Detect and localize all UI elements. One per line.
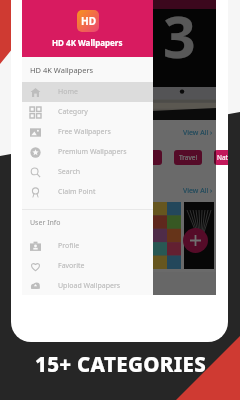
button[interactable]: 15+ CATEGORIES: [35, 350, 207, 378]
staticText: Upload Wallpapers: [58, 281, 121, 291]
button[interactable]: Home: [22, 82, 153, 102]
button[interactable]: Premium: [22, 272, 70, 295]
staticText: Premium Wallpapers: [58, 147, 127, 157]
staticText: Travel: [179, 153, 198, 162]
button[interactable]: Premium Wallpapers: [22, 142, 153, 162]
button[interactable]: Travel: [174, 150, 202, 165]
button[interactable]: Profile: [22, 236, 153, 256]
button[interactable]: Search: [70, 272, 118, 295]
staticText: Nature: [217, 153, 228, 162]
button[interactable]: Nature: [214, 150, 228, 165]
button[interactable]: View All ›: [183, 186, 213, 196]
staticText: Claim Point: [58, 187, 96, 197]
staticText: Profile: [58, 241, 80, 251]
button[interactable]: Upload Wallpapers: [22, 276, 153, 295]
staticText: Favorite: [58, 261, 85, 271]
button[interactable]: Free Wallpapers: [22, 122, 153, 142]
button[interactable]: Add wallpaper: [183, 228, 208, 253]
staticText: Category: [58, 107, 88, 117]
staticText: User Info: [30, 218, 61, 228]
button[interactable]: Category: [22, 102, 153, 122]
staticText: 3: [163, 0, 196, 75]
staticText: HD 4K Wallpapers: [52, 37, 123, 48]
button[interactable]: Claim Point: [22, 182, 153, 202]
staticText: HD: [81, 14, 96, 28]
staticText: Home: [58, 87, 78, 97]
staticText: Free Wallpapers: [58, 127, 111, 137]
button[interactable]: Favorite: [22, 256, 153, 276]
button[interactable]: View All ›: [183, 128, 213, 138]
staticText: HD 4K Wallpapers: [30, 65, 94, 75]
button[interactable]: Search: [22, 162, 153, 182]
button[interactable]: [134, 150, 162, 165]
staticText: Search: [58, 167, 81, 177]
